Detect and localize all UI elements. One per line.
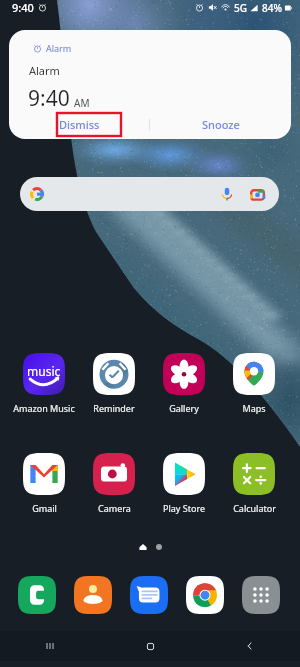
staticText: Gmail — [32, 502, 57, 514]
staticText: 84% — [262, 1, 282, 15]
button[interactable]: Messages — [130, 575, 186, 614]
staticText: Camera — [98, 502, 131, 514]
staticText: Alarm — [46, 42, 72, 54]
staticText: Play Store — [163, 502, 205, 514]
staticText: Gallery — [169, 402, 199, 414]
staticText: Calculator — [233, 502, 276, 514]
button[interactable]: Gallery — [149, 353, 219, 414]
staticText: Alarm — [29, 63, 60, 78]
button[interactable]: Snooze — [150, 110, 291, 139]
button[interactable]: Camera — [79, 453, 149, 514]
staticText: Reminder — [93, 402, 135, 414]
staticText: 5G — [234, 1, 247, 15]
button[interactable]: Recent apps — [0, 631, 100, 661]
button[interactable]: Gmail — [9, 453, 79, 514]
staticText: 9:40 — [28, 84, 70, 113]
button[interactable]: Phone — [18, 575, 74, 614]
staticText: Maps — [242, 402, 266, 414]
button[interactable]: Dismiss — [9, 110, 149, 139]
button[interactable]: music — [9, 353, 79, 414]
button[interactable]: Home — [100, 631, 200, 661]
button[interactable]: Apps — [242, 575, 298, 614]
staticText: Snooze — [202, 117, 240, 132]
staticText: Dismiss — [59, 117, 100, 132]
staticText: AM — [74, 96, 90, 110]
button[interactable]: Play Store — [149, 453, 219, 514]
button[interactable]: Chrome — [186, 575, 242, 614]
staticText: music — [27, 363, 61, 379]
button[interactable]: Maps — [219, 353, 289, 414]
staticText: Amazon Music — [13, 402, 75, 414]
button[interactable]: Reminder — [79, 353, 149, 414]
button[interactable]: Calculator — [219, 453, 289, 514]
button[interactable]: Contacts — [74, 575, 130, 614]
button[interactable]: Back — [200, 631, 300, 661]
button[interactable] — [20, 177, 279, 211]
staticText: 9:40 — [12, 0, 34, 15]
